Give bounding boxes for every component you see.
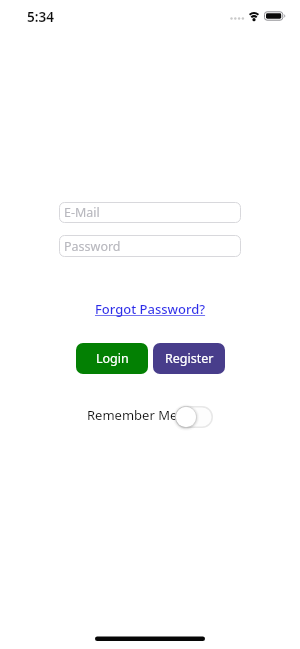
button[interactable]: E-Mail (59, 202, 241, 223)
staticText: Remember Me (87, 406, 178, 424)
button[interactable]: Password (59, 235, 241, 257)
button[interactable] (175, 406, 213, 428)
staticText: 5:34 (27, 8, 54, 26)
button[interactable]: Forgot Password? (95, 300, 206, 318)
button[interactable]: Register (153, 343, 225, 374)
button[interactable]: Login (76, 343, 148, 374)
staticText: Login (96, 350, 129, 367)
staticText: Register (165, 350, 214, 367)
staticText: E-Mail (64, 204, 100, 221)
staticText: Password (64, 238, 121, 255)
